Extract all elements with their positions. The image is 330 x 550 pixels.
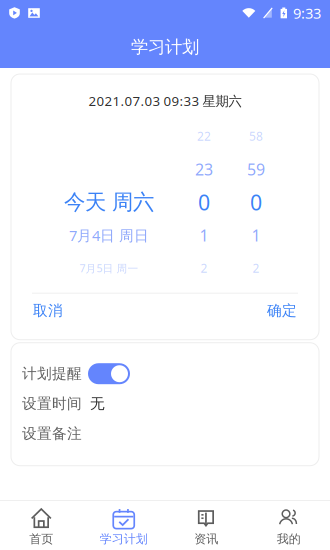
staticText: 1 [199, 225, 208, 246]
staticText: 学习计划 [131, 36, 199, 58]
staticText: 今天 周六 [64, 189, 154, 215]
button[interactable]: 资讯 [165, 500, 247, 550]
button[interactable]: 计划提醒 [11, 359, 319, 389]
staticText: 7月5日 周一 [79, 261, 138, 275]
button[interactable]: 取消 [29, 294, 67, 340]
staticText: 59 [247, 159, 265, 180]
button[interactable]: 学习计划 [82, 500, 165, 550]
staticText: 22 [197, 128, 211, 144]
staticText: 0 [250, 188, 262, 216]
staticText: 计划提醒 [22, 365, 82, 383]
staticText: 2 [252, 260, 259, 276]
button[interactable]: 设置时间 [11, 389, 319, 419]
staticText: 我的 [277, 532, 301, 546]
staticText: 1 [251, 225, 260, 246]
staticText: 首页 [29, 532, 53, 546]
staticText: 确定 [267, 302, 297, 320]
staticText: 23 [195, 159, 213, 180]
staticText: 2 [200, 260, 207, 276]
staticText: 设置备注 [22, 425, 82, 443]
staticText: 0 [198, 188, 210, 216]
staticText: 学习计划 [100, 532, 148, 546]
staticText: 2021.07.03 09:33 星期六 [88, 92, 241, 110]
staticText: 9:33 [293, 3, 321, 23]
staticText: 取消 [33, 302, 63, 320]
button[interactable]: 确定 [263, 294, 301, 340]
button[interactable]: 我的 [247, 500, 330, 550]
staticText: 7月4日 周日 [69, 225, 149, 245]
button[interactable]: 设置备注 [11, 419, 319, 449]
staticText: 资讯 [194, 532, 218, 546]
staticText: 无 [90, 395, 105, 413]
staticText: 设置时间 [22, 395, 82, 413]
staticText: 58 [249, 128, 263, 144]
button[interactable]: 首页 [0, 500, 82, 550]
